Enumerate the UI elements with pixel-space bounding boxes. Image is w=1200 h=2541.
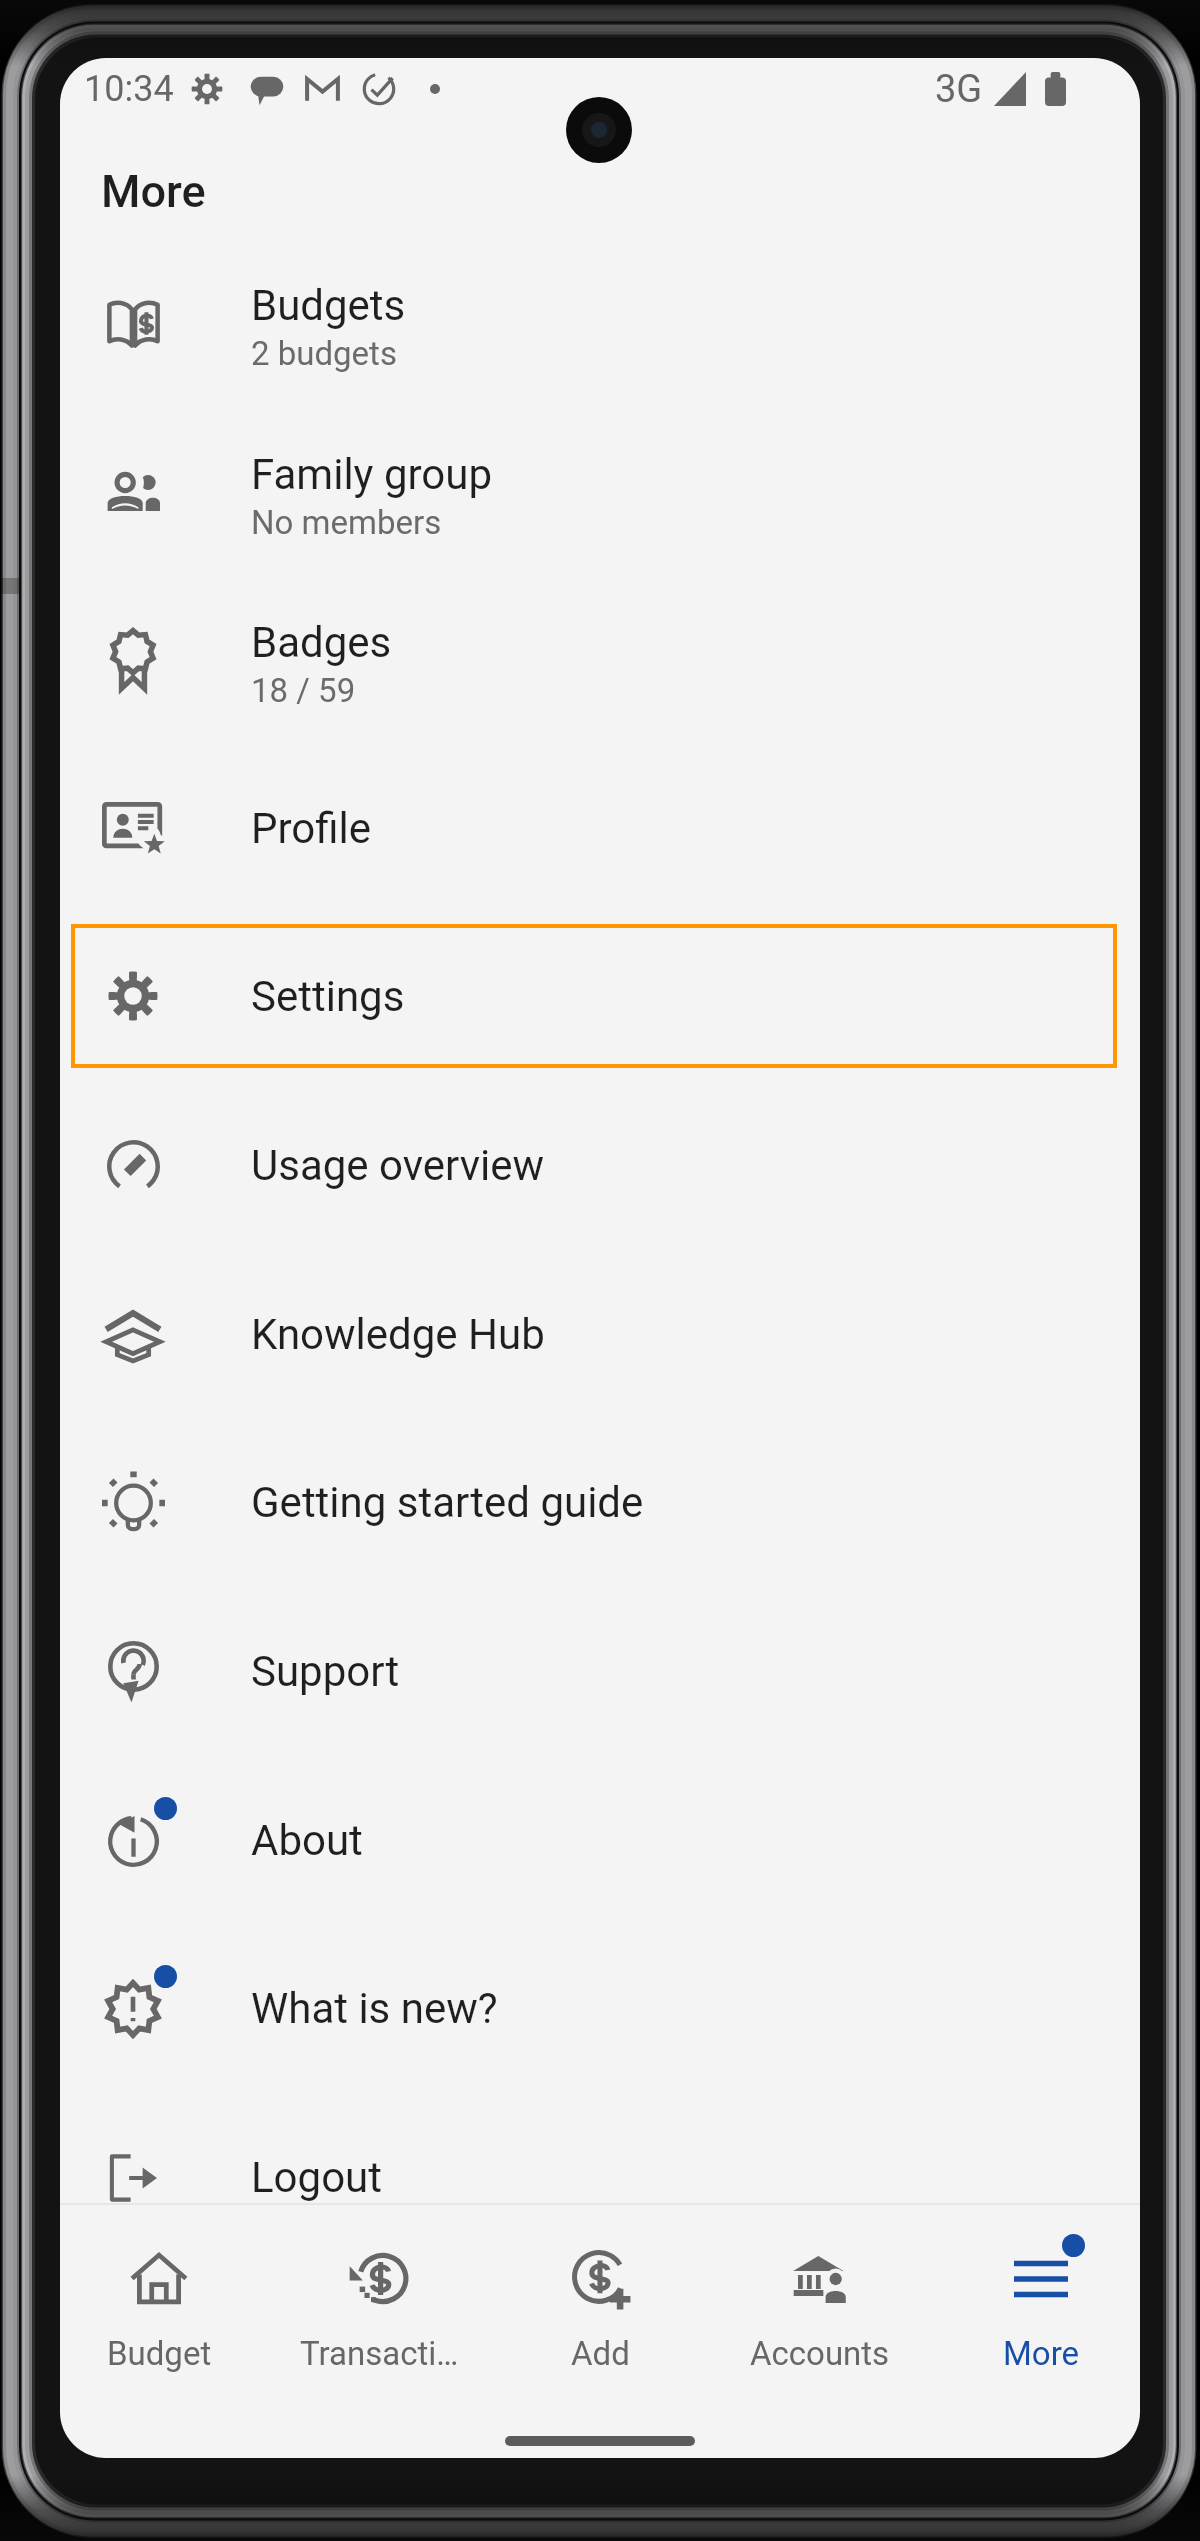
staticText: Profile <box>251 804 372 853</box>
button[interactable]: Settings <box>71 924 1117 1068</box>
button[interactable]: Budgets <box>60 238 1140 407</box>
button[interactable]: Add tab <box>493 2220 707 2392</box>
button[interactable]: About <box>60 1756 1140 1925</box>
staticText: Budget <box>107 2334 212 2373</box>
staticText: More <box>1003 2334 1080 2373</box>
staticText: About <box>251 1816 363 1865</box>
staticText: 18 / 59 <box>251 671 356 710</box>
button[interactable]: Knowledge Hub <box>60 1250 1140 1419</box>
staticText: Transacti… <box>300 2334 459 2373</box>
staticText: Budgets <box>251 281 406 330</box>
staticText: 3G <box>935 67 983 112</box>
button[interactable]: Getting started guide <box>60 1418 1140 1587</box>
staticText: More <box>101 165 206 218</box>
button[interactable]: Logout <box>60 2093 1140 2262</box>
staticText: 10:34 <box>84 68 174 110</box>
button[interactable]: Badges <box>60 575 1140 744</box>
staticText: Add <box>571 2334 630 2373</box>
staticText: Badges <box>251 618 392 667</box>
staticText: Family group <box>251 450 493 499</box>
button[interactable]: What is new? <box>60 1924 1140 2093</box>
button[interactable]: Family group <box>60 407 1140 576</box>
staticText: What is new? <box>251 1984 498 2033</box>
staticText: 2 budgets <box>251 334 397 373</box>
staticText: No members <box>251 503 442 542</box>
staticText: Usage overview <box>251 1141 545 1190</box>
staticText: Logout <box>251 2153 383 2202</box>
button[interactable]: More tab <box>934 2220 1140 2392</box>
staticText: Accounts <box>750 2334 890 2373</box>
button[interactable]: Transactions tab <box>272 2220 486 2392</box>
button[interactable]: Usage overview <box>60 1081 1140 1250</box>
button[interactable]: Support <box>60 1587 1140 1756</box>
button[interactable]: Profile <box>60 744 1140 913</box>
staticText: Knowledge Hub <box>251 1310 545 1359</box>
staticText: Getting started guide <box>251 1478 644 1527</box>
staticText: Support <box>251 1647 400 1696</box>
button[interactable]: Budget tab <box>60 2220 266 2392</box>
button[interactable]: Accounts tab <box>713 2220 927 2392</box>
staticText: Settings <box>251 972 405 1021</box>
